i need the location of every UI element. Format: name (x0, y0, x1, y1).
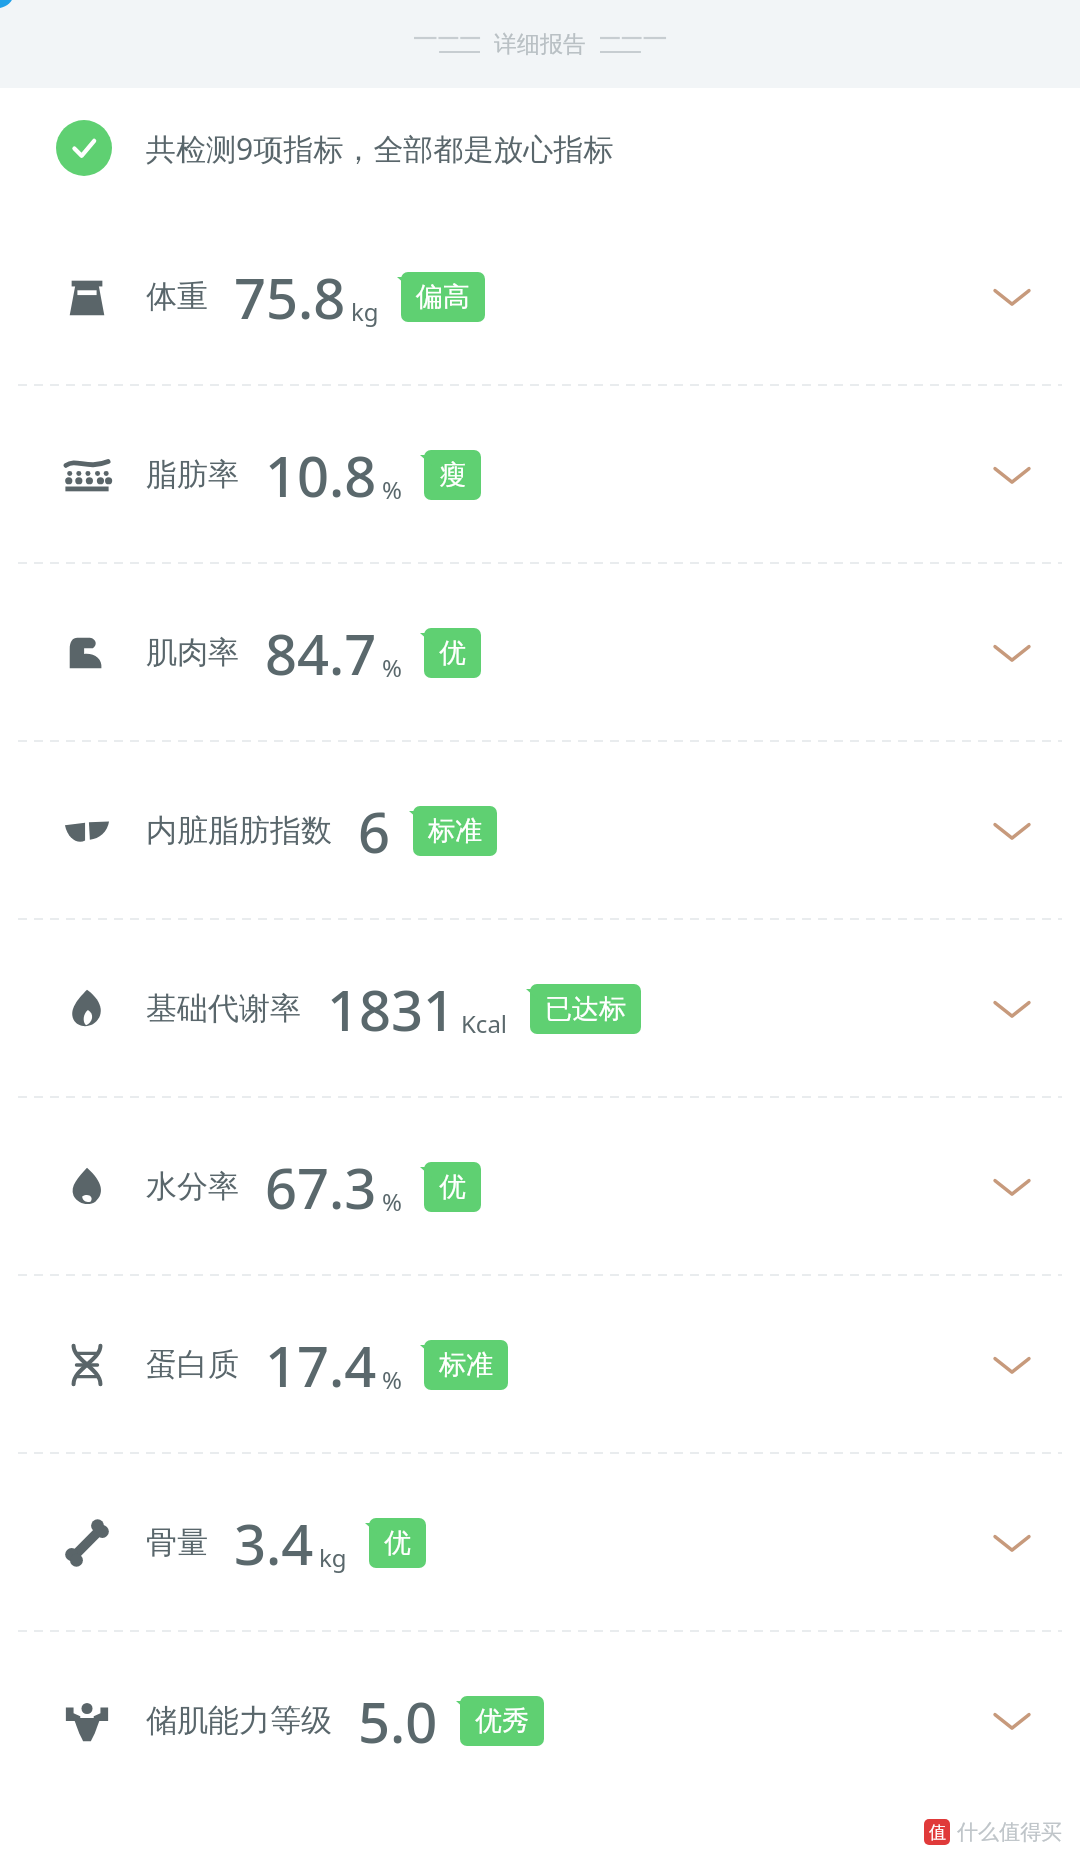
staticText: 67.3 (265, 1149, 377, 1225)
staticText: 3.4 (234, 1505, 314, 1581)
button[interactable]: 骨量 (0, 1454, 1080, 1631)
other: 展开 水分率 (984, 1159, 1040, 1215)
staticText: 优 (439, 1170, 466, 1204)
staticText: % (382, 651, 402, 684)
other: 展开 骨量 (984, 1515, 1040, 1571)
staticText: 内脏脂肪指数 (146, 811, 332, 850)
staticText: Kcal (461, 1007, 508, 1040)
other: 展开 脂肪率 (984, 447, 1040, 503)
staticText: 什么值得买 (957, 1819, 1062, 1845)
staticText: 体重 (146, 277, 208, 316)
staticText: 骨量 (146, 1523, 208, 1562)
other: 展开 基础代谢率 (984, 981, 1040, 1037)
staticText: 标准 (428, 814, 482, 848)
staticText: 17.4 (265, 1327, 377, 1403)
staticText: 瘦 (439, 458, 466, 492)
staticText: 储肌能力等级 (146, 1701, 332, 1740)
staticText: 5.0 (358, 1683, 438, 1759)
staticText: 已达标 (545, 992, 626, 1026)
button[interactable]: 基础代谢率 (0, 920, 1080, 1097)
button[interactable]: 蛋白质 (0, 1276, 1080, 1453)
other: 展开 内脏脂肪指数 (984, 803, 1040, 859)
staticText: % (382, 473, 402, 506)
staticText: 肌肉率 (146, 633, 239, 672)
staticText: 蛋白质 (146, 1345, 239, 1384)
staticText: % (382, 1363, 402, 1396)
staticText: kg (351, 295, 379, 328)
other: 展开 储肌能力等级 (984, 1693, 1040, 1749)
staticText: 优秀 (475, 1704, 529, 1738)
staticText: % (382, 1185, 402, 1218)
staticText: 优 (439, 636, 466, 670)
other: 展开 体重 (984, 269, 1040, 325)
other: 展开 肌肉率 (984, 625, 1040, 681)
staticText: kg (319, 1541, 347, 1574)
staticText: 偏高 (416, 280, 470, 314)
staticText: 1831 (327, 971, 456, 1047)
staticText: 75.8 (234, 259, 346, 335)
button[interactable]: 内脏脂肪指数 (0, 742, 1080, 919)
staticText: 6 (358, 793, 391, 869)
button[interactable]: 体重 (0, 208, 1080, 385)
staticText: 详细报告 (494, 30, 586, 59)
button[interactable]: 储肌能力等级 (0, 1632, 1080, 1809)
button[interactable]: 水分率 (0, 1098, 1080, 1275)
staticText: 84.7 (265, 615, 377, 691)
button[interactable]: 脂肪率 (0, 386, 1080, 563)
staticText: 脂肪率 (146, 455, 239, 494)
staticText: 共检测9项指标，全部都是放心指标 (146, 128, 614, 169)
staticText: 值 (929, 1822, 946, 1843)
staticText: 基础代谢率 (146, 989, 301, 1028)
other: 展开 蛋白质 (984, 1337, 1040, 1393)
staticText: 优 (384, 1526, 411, 1560)
button[interactable]: 肌肉率 (0, 564, 1080, 741)
staticText: 标准 (439, 1348, 493, 1382)
staticText: 10.8 (265, 437, 377, 513)
staticText: 水分率 (146, 1167, 239, 1206)
